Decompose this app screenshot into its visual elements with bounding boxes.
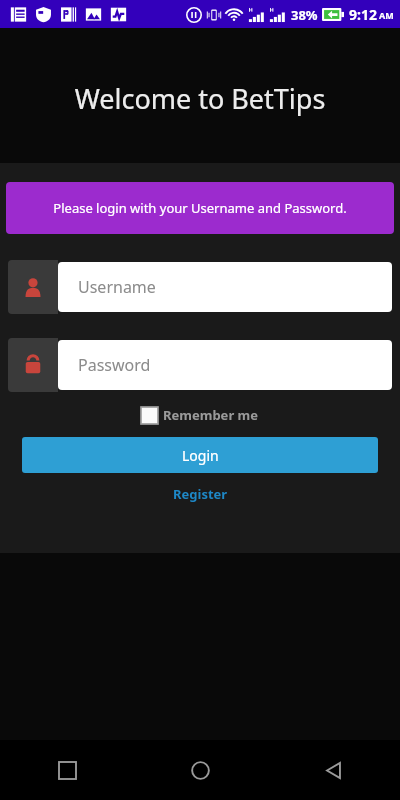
staticText: Remember me [163, 406, 259, 424]
other: Username [8, 260, 58, 314]
button[interactable]: Username [8, 260, 392, 314]
staticText: Welcome to BetTips [0, 80, 400, 117]
button[interactable]: Remember me [137, 403, 263, 427]
staticText: 38% [291, 6, 318, 24]
button[interactable]: Register [163, 481, 238, 507]
button[interactable]: Back [267, 740, 400, 800]
staticText: Login [182, 446, 219, 465]
button[interactable]: Login [22, 437, 378, 473]
other: Password [8, 338, 58, 392]
button[interactable]: Please login with your Username and Pass… [6, 182, 394, 234]
staticText: Please login with your Username and Pass… [53, 199, 347, 217]
button[interactable]: Home [134, 740, 267, 800]
staticText: 9:12 [349, 5, 377, 24]
staticText: AM [379, 9, 394, 21]
button[interactable]: Password [8, 338, 392, 392]
button[interactable]: Recents [0, 740, 134, 800]
staticText: Username [78, 276, 156, 298]
staticText: Password [78, 354, 151, 376]
